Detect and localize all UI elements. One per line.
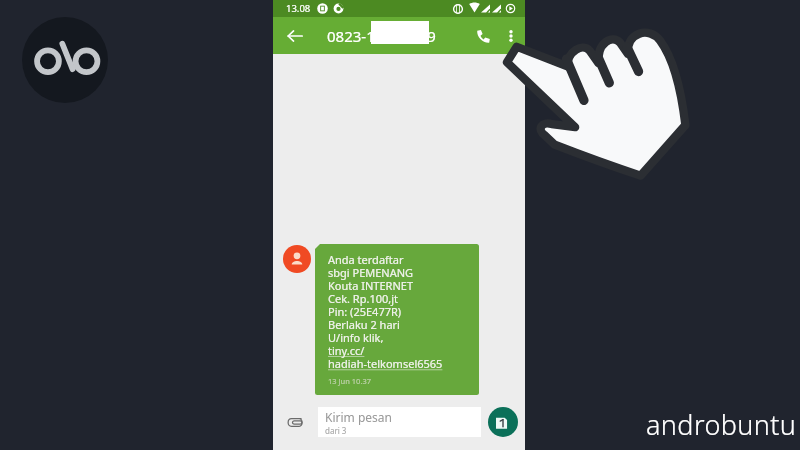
- staticText: 13.08: [286, 2, 311, 15]
- button[interactable]: Anda terdaftar sbgi PEMENANG Kouta INTER…: [315, 244, 479, 395]
- button[interactable]: Attach: [282, 409, 308, 435]
- button[interactable]: Contact avatar: [283, 245, 311, 273]
- staticText: 13 Jun 10.37: [328, 376, 371, 386]
- staticText: 0823-10XXXXX9: [327, 26, 436, 46]
- button[interactable]: androbuntu logo: [22, 17, 108, 103]
- button[interactable]: Call: [468, 21, 498, 51]
- button[interactable]: Kirim pesan: [318, 407, 481, 437]
- button[interactable]: Send: [488, 407, 518, 437]
- staticText: dari 3: [325, 425, 347, 436]
- button[interactable]: Back: [280, 21, 310, 51]
- staticText: Kirim pesan: [325, 409, 392, 425]
- staticText: androbuntu: [646, 406, 797, 443]
- button[interactable]: More options: [498, 23, 524, 49]
- staticText: Anda terdaftar sbgi PEMENANG Kouta INTER…: [328, 252, 443, 372]
